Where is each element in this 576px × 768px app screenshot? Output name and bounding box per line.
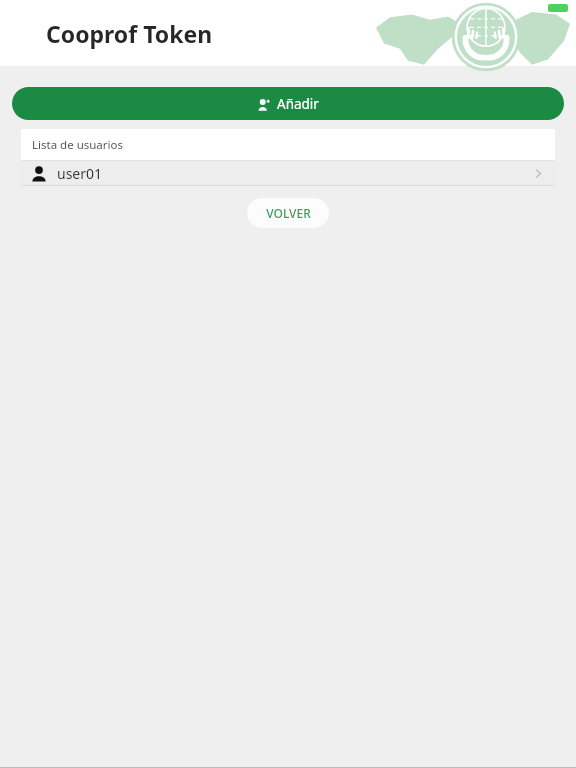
staticText: Lista de usuarios (32, 137, 123, 153)
staticText: Cooprof Token (46, 18, 213, 49)
staticText: Añadir (277, 95, 319, 113)
staticText: user01 (57, 164, 533, 183)
button[interactable]: VOLVER (247, 198, 329, 228)
staticText: VOLVER (266, 205, 311, 221)
button[interactable]: user01 (21, 161, 555, 186)
button[interactable]: Añadir (12, 87, 564, 120)
